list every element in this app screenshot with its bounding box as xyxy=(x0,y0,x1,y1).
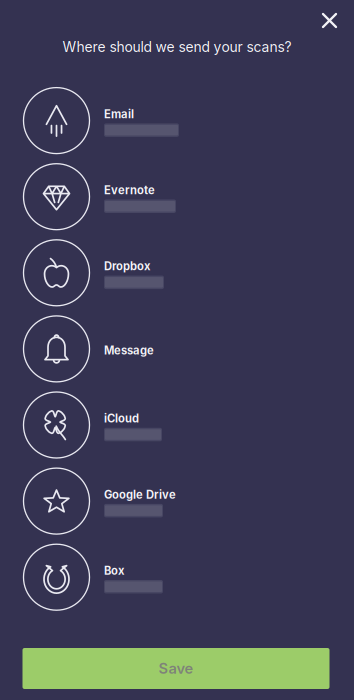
button[interactable]: Save xyxy=(22,648,329,689)
staticText: iCloud xyxy=(104,412,139,425)
staticText: Google Drive xyxy=(104,488,176,501)
staticText: Dropbox xyxy=(104,259,150,273)
staticText: Where should we send your scans? xyxy=(62,39,291,55)
staticText: Box xyxy=(104,564,124,577)
button[interactable]: Close xyxy=(311,3,347,37)
staticText: Save xyxy=(158,660,193,677)
staticText: Evernote xyxy=(104,183,155,197)
staticText: Email xyxy=(104,107,134,121)
staticText: Message xyxy=(104,344,154,357)
